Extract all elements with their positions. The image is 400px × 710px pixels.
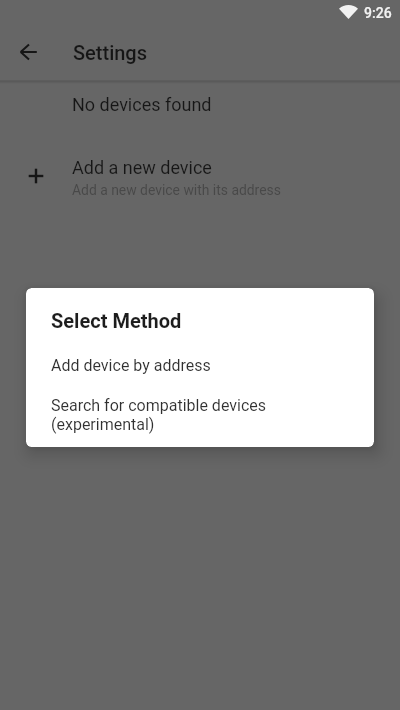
staticText: No devices found — [72, 94, 212, 115]
staticText: 9:26 — [364, 5, 392, 21]
button[interactable]: Search for compatible devices (experimen… — [26, 390, 374, 442]
staticText: Add device by address — [51, 356, 211, 375]
button[interactable]: Navigate up — [8, 32, 48, 72]
button[interactable]: Add a new device — [0, 147, 400, 205]
staticText: Add a new device with its address — [72, 182, 281, 198]
staticText: Search for compatible devices (experimen… — [51, 396, 267, 434]
staticText: Settings — [73, 41, 148, 64]
button[interactable]: Add device by address — [26, 350, 374, 382]
staticText: Add a new device — [72, 157, 212, 178]
staticText: Select Method — [51, 309, 182, 332]
